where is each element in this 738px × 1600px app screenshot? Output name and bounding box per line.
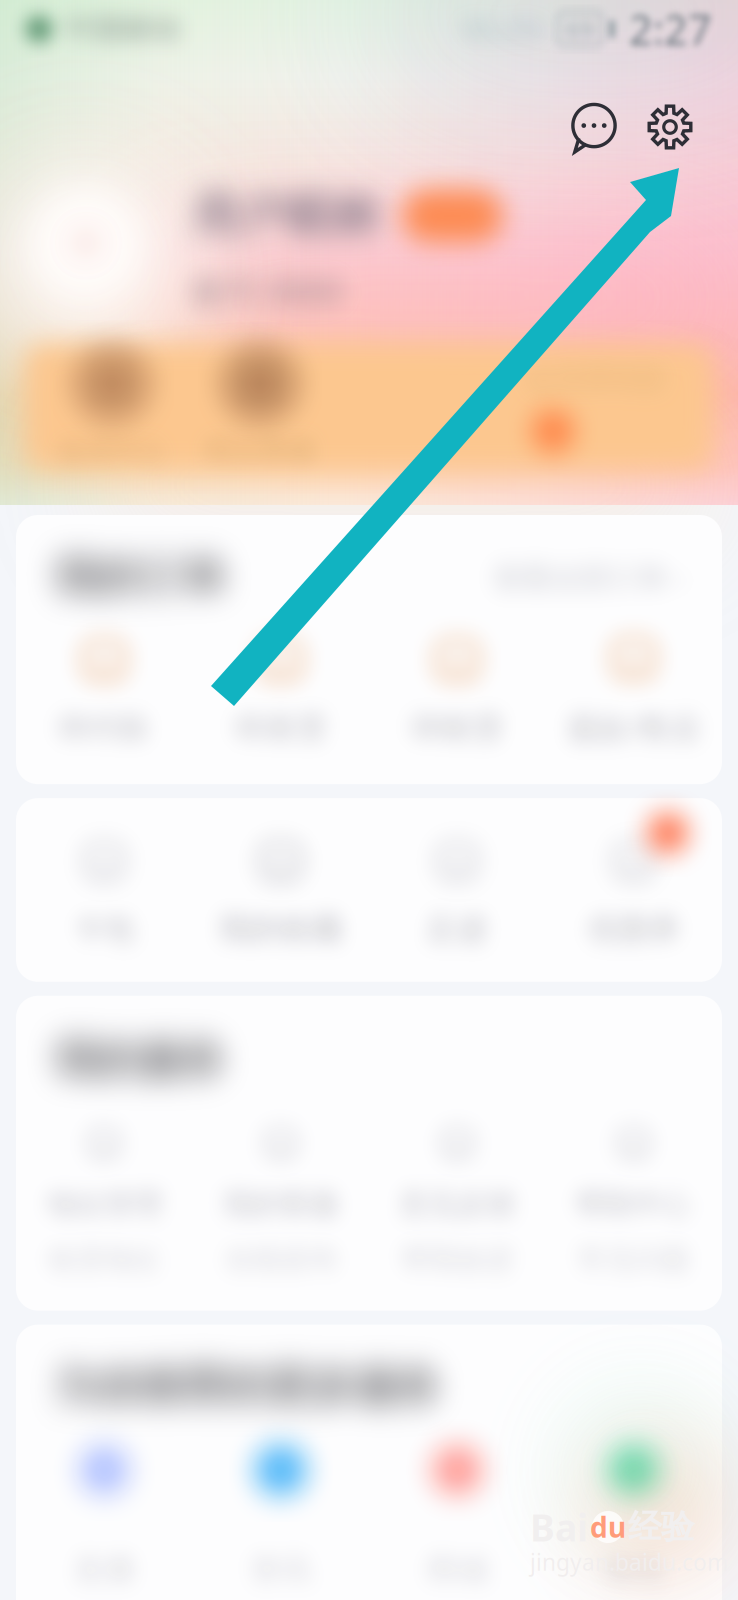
button[interactable]: 直播: [16, 1441, 192, 1589]
button[interactable]: 我的客服: [192, 1120, 369, 1277]
button[interactable]: 地址管理: [16, 1120, 192, 1277]
button[interactable]: 足迹: [369, 832, 545, 948]
staticText: 经验: [628, 1506, 694, 1547]
button[interactable]: 资讯: [192, 1441, 369, 1589]
button[interactable]: 积分商城: [186, 348, 334, 466]
button[interactable]: 优惠券: [545, 832, 722, 948]
button[interactable]: 卡包: [16, 832, 192, 948]
button[interactable]: 待付款: [16, 631, 192, 747]
button[interactable]: 待收货: [369, 631, 545, 747]
button[interactable]: 帮助中心: [545, 1120, 722, 1277]
button[interactable]: 钱包: [545, 1441, 722, 1589]
button[interactable]: 查看全部订单 ›: [493, 558, 684, 597]
button[interactable]: 会员中心: [38, 348, 186, 466]
button[interactable]: 商城: [369, 1441, 545, 1589]
staticText: jingyan.baidu.com: [530, 1547, 728, 1577]
staticText: Bai: [530, 1502, 588, 1552]
button[interactable]: 会员享特权: [526, 362, 696, 452]
button[interactable]: 我的收藏: [192, 832, 369, 948]
button[interactable]: 退款/售后: [545, 629, 722, 748]
button[interactable]: Settings: [644, 100, 696, 154]
button[interactable]: Messages: [566, 100, 622, 154]
button[interactable]: 意见反馈: [369, 1120, 545, 1277]
button[interactable]: Avatar: [26, 181, 146, 305]
button[interactable]: 待发货: [192, 631, 369, 747]
staticText: du: [590, 1508, 626, 1546]
